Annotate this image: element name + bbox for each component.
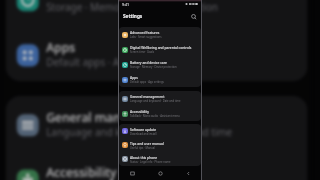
button[interactable]: Search — [189, 12, 198, 21]
button[interactable]: Software update — [119, 124, 201, 138]
staticText: Default apps · App settings — [130, 80, 164, 84]
staticText: 9:41 — [122, 2, 130, 7]
staticText: Download and install — [130, 132, 157, 136]
button[interactable]: Apps — [119, 72, 201, 87]
button[interactable]: Tips and user manual — [119, 138, 201, 152]
staticText: General management — [130, 94, 165, 98]
button[interactable]: General management — [119, 91, 201, 106]
staticText: Storage · Memory · Device protection — [46, 0, 219, 15]
staticText: General management — [46, 107, 175, 122]
staticText: Accessibility — [46, 162, 120, 177]
staticText: Advanced features — [130, 30, 160, 34]
staticText: About this phone — [130, 155, 158, 159]
staticText: Default apps · App settings — [46, 55, 171, 70]
staticText: Useful tips · Manual — [130, 146, 155, 150]
button[interactable]: Digital Wellbeing and parental controls — [119, 42, 201, 57]
staticText: Status · Legal info · Phone name — [130, 160, 171, 164]
staticText: Settings — [123, 13, 143, 19]
staticText: Apps — [130, 75, 138, 79]
staticText: Labs · Smart suggestions — [130, 35, 162, 39]
staticText: Accessibility — [130, 109, 150, 113]
button[interactable]: Home — [146, 166, 174, 180]
button[interactable]: Battery and device care — [119, 57, 201, 72]
staticText: Language and keyboard · Date and time — [46, 125, 234, 140]
staticText: Apps — [46, 37, 76, 52]
staticText: Software update — [130, 127, 157, 131]
staticText: Screen time · Goals — [130, 50, 155, 54]
staticText: Language and keyboard · Date and time — [130, 99, 181, 103]
staticText: TalkBack · Mono audio · Assistant menu — [130, 114, 180, 118]
button[interactable]: Recents — [118, 166, 146, 180]
button[interactable]: About this phone — [119, 152, 201, 166]
button[interactable]: Advanced features — [119, 27, 201, 42]
staticText: Battery and device care — [130, 60, 167, 64]
staticText: Digital Wellbeing and parental controls — [130, 45, 192, 49]
button[interactable]: Accessibility — [119, 106, 201, 121]
staticText: Storage · Memory · Device protection — [130, 65, 177, 69]
staticText: Tips and user manual — [130, 141, 164, 145]
button[interactable]: Back — [174, 166, 202, 180]
